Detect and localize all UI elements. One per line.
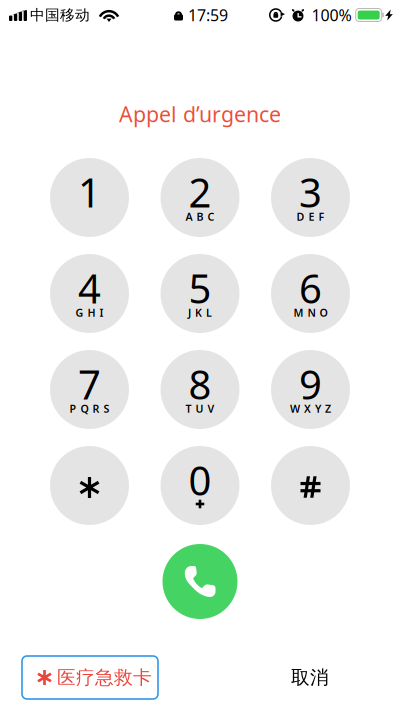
staticText: Appel d’urgence [119, 100, 281, 128]
button[interactable]: Star [50, 446, 129, 525]
staticText: 7 [78, 357, 101, 410]
staticText: 取消 [291, 666, 329, 689]
staticText: 17:59 [188, 4, 228, 26]
staticText: 6 [299, 261, 322, 314]
staticText: 0 [188, 453, 211, 506]
button[interactable]: Pound [271, 446, 350, 525]
button[interactable]: 2 [160, 158, 239, 237]
staticText: G H I [75, 305, 103, 320]
staticText: 8 [188, 357, 211, 410]
staticText: 5 [188, 261, 211, 314]
button[interactable]: Call [162, 544, 237, 619]
button[interactable]: 医疗急救卡 [22, 656, 158, 699]
button[interactable]: 7 [50, 350, 129, 429]
button[interactable]: 8 [160, 350, 239, 429]
button[interactable]: 5 [160, 254, 239, 333]
button[interactable]: 9 [271, 350, 350, 429]
staticText: D E F [296, 209, 324, 224]
staticText: A B C [185, 209, 214, 224]
staticText: W X Y Z [290, 401, 331, 416]
staticText: M N O [293, 305, 327, 320]
staticText: 医疗急救卡 [57, 666, 152, 689]
button[interactable]: 4 [50, 254, 129, 333]
button[interactable]: 1 [50, 158, 129, 237]
staticText: T U V [185, 401, 214, 416]
staticText: 100% [311, 4, 351, 26]
button[interactable]: 取消 [274, 656, 346, 699]
staticText: 3 [299, 165, 322, 218]
staticText: J K L [188, 305, 212, 320]
staticText: 4 [78, 261, 101, 314]
staticText: 9 [299, 357, 322, 410]
staticText: P Q R S [69, 401, 109, 416]
button[interactable]: 3 [271, 158, 350, 237]
staticText: 1 [78, 165, 101, 218]
button[interactable]: 6 [271, 254, 350, 333]
button[interactable]: 0 [160, 446, 239, 525]
staticText: 2 [188, 165, 211, 218]
staticText: 中国移动 [30, 6, 90, 24]
